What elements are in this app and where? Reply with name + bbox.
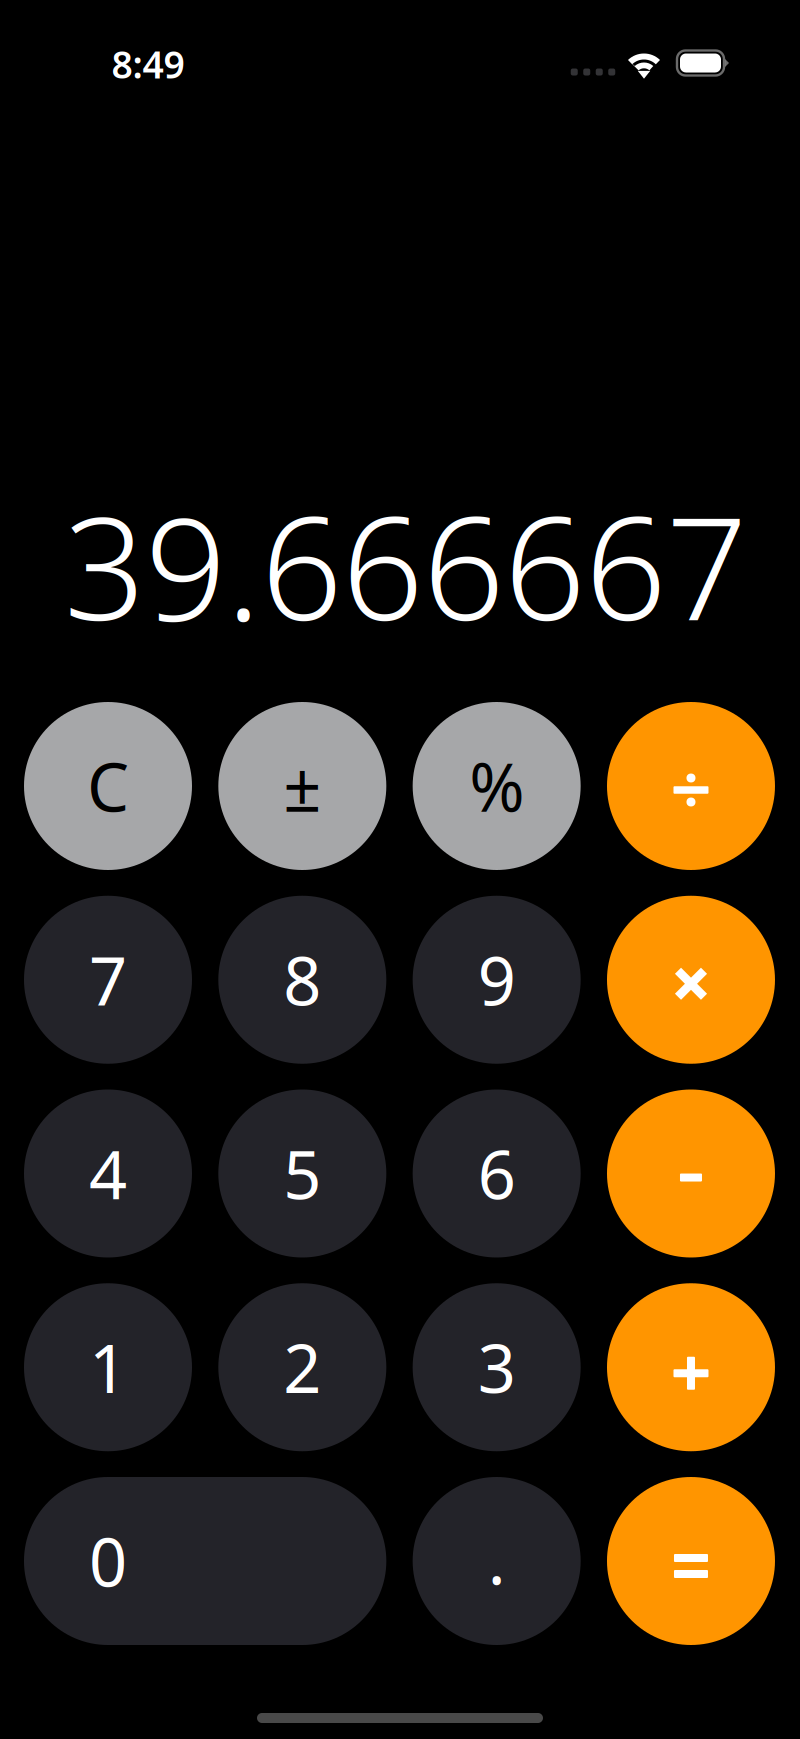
- staticText: 8: [283, 935, 321, 1024]
- button[interactable]: 3: [413, 1283, 581, 1451]
- button[interactable]: 5: [218, 1089, 386, 1257]
- staticText: 0: [89, 1517, 127, 1605]
- staticText: 7: [89, 935, 127, 1024]
- staticText: ±: [283, 742, 321, 830]
- button[interactable]: Multiply: [607, 896, 775, 1064]
- staticText: C: [87, 742, 129, 830]
- button[interactable]: 7: [24, 896, 192, 1064]
- button[interactable]: 4: [24, 1089, 192, 1257]
- staticText: 8:49: [111, 39, 184, 89]
- staticText: %: [469, 742, 524, 830]
- button[interactable]: C: [24, 702, 192, 870]
- button[interactable]: 9: [413, 896, 581, 1064]
- button[interactable]: .: [413, 1477, 581, 1645]
- staticText: 39.666667: [64, 470, 747, 660]
- button[interactable]: ±: [218, 702, 386, 870]
- staticText: 2: [283, 1323, 321, 1411]
- button[interactable]: 8: [218, 896, 386, 1064]
- staticText: 5: [283, 1129, 321, 1218]
- staticText: 4: [89, 1129, 127, 1218]
- button[interactable]: 1: [24, 1283, 192, 1451]
- staticText: 6: [478, 1129, 516, 1218]
- staticText: 3: [478, 1323, 516, 1411]
- button[interactable]: %: [413, 702, 581, 870]
- button[interactable]: Add: [607, 1283, 775, 1451]
- button[interactable]: Equals: [607, 1477, 775, 1645]
- button[interactable]: 6: [413, 1089, 581, 1257]
- staticText: 1: [89, 1323, 127, 1411]
- button[interactable]: Divide: [607, 702, 775, 870]
- staticText: .: [488, 1515, 506, 1603]
- button[interactable]: 2: [218, 1283, 386, 1451]
- button[interactable]: 0: [24, 1477, 386, 1645]
- button[interactable]: Subtract: [607, 1089, 775, 1257]
- staticText: 9: [478, 935, 516, 1024]
